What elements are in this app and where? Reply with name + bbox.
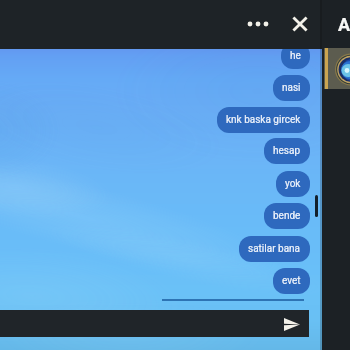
button[interactable]: he (281, 49, 310, 69)
staticText: nasi (282, 82, 301, 94)
button[interactable]: evet (273, 268, 310, 294)
button[interactable]: Close (283, 7, 317, 41)
staticText: evet (282, 275, 301, 287)
staticText: bende (273, 210, 301, 222)
button[interactable]: yok (276, 171, 310, 197)
button[interactable]: nasi (273, 75, 310, 101)
button[interactable]: bende (264, 203, 310, 229)
button[interactable]: knk baska gircek (217, 107, 310, 133)
button[interactable]: hesap (264, 138, 310, 164)
staticText: hesap (273, 145, 301, 157)
staticText: satilar bana (248, 243, 301, 255)
staticText: A (338, 14, 350, 35)
button[interactable]: Send (277, 310, 304, 337)
staticText: he (290, 50, 301, 62)
staticText: yok (285, 178, 301, 190)
staticText: knk baska gircek (226, 114, 301, 126)
button[interactable]: More options (241, 7, 275, 41)
button[interactable]: satilar bana (239, 236, 310, 262)
